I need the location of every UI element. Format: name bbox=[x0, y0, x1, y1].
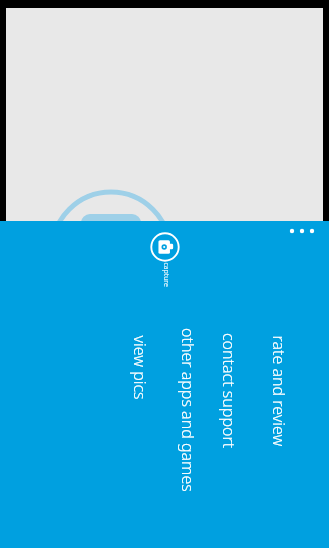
staticText: capture bbox=[160, 262, 170, 287]
staticText: view pics bbox=[128, 335, 150, 400]
button[interactable]: other apps and games bbox=[175, 333, 201, 487]
staticText: rate and review bbox=[267, 335, 289, 446]
button[interactable]: view pics bbox=[126, 333, 152, 402]
button[interactable]: capture bbox=[141, 226, 189, 302]
button[interactable]: More options bbox=[281, 221, 329, 245]
button[interactable]: rate and review bbox=[265, 333, 291, 449]
button[interactable]: contact support bbox=[216, 333, 242, 449]
staticText: other apps and games bbox=[177, 328, 199, 492]
staticText: contact support bbox=[218, 333, 240, 449]
